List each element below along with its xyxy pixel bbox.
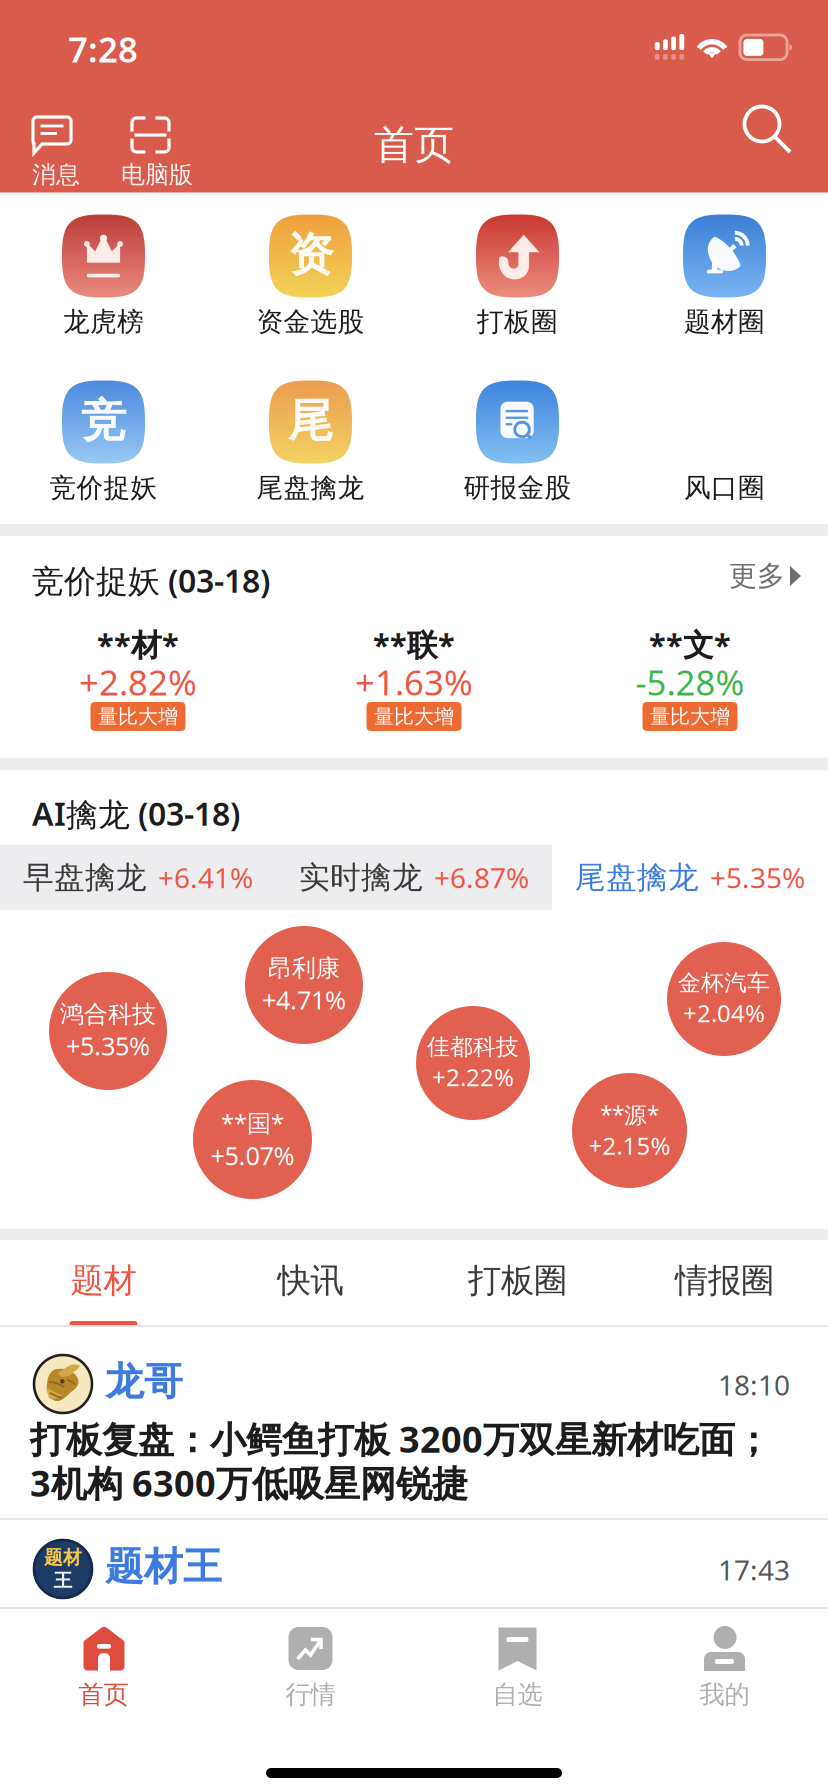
staticText: 早盘擒龙 (23, 859, 147, 896)
staticText: 实时擒龙 (299, 859, 423, 896)
staticText: 题材圈 (684, 305, 765, 338)
staticText: 自选 (492, 1679, 542, 1710)
button[interactable]: 自选 (414, 1609, 621, 1729)
staticText: 竞价捉妖 (03-18) (32, 559, 270, 601)
staticText: 首页 (78, 1679, 128, 1710)
button[interactable]: 打板圈 (414, 1240, 621, 1327)
staticText: +2.04% (683, 997, 765, 1029)
staticText: -5.28% (635, 659, 744, 705)
staticText: 消息 (32, 160, 80, 189)
staticText: 尾 (288, 393, 333, 449)
button[interactable]: 竞 (0, 358, 207, 524)
staticText: 电脑版 (121, 160, 193, 189)
staticText: 行情 (285, 1679, 335, 1710)
staticText: 尾盘擒龙 (575, 859, 699, 896)
button[interactable]: 龙虎榜 (0, 192, 207, 358)
staticText: 量比大增 (98, 704, 178, 729)
staticText: 研报金股 (463, 471, 571, 504)
staticText: 3机构 6300万低吸星网锐捷 (30, 1459, 468, 1507)
staticText: +2.22% (432, 1061, 514, 1093)
staticText: 首页 (374, 120, 454, 169)
staticText: 佳都科技 (427, 1033, 519, 1061)
button[interactable]: 研报金股 (414, 358, 621, 524)
staticText: +5.35% (66, 1029, 150, 1062)
button[interactable]: 搜索 (740, 102, 800, 162)
staticText: +5.35% (710, 859, 805, 896)
staticText: +6.87% (434, 859, 529, 896)
staticText: 题材 (70, 1260, 136, 1301)
staticText: 王 (53, 1569, 72, 1592)
staticText: 尾盘擒龙 (256, 471, 364, 504)
staticText: 竞价捉妖 (49, 471, 157, 504)
staticText: 量比大增 (374, 704, 454, 729)
button[interactable]: 打板圈 (414, 192, 621, 358)
staticText: 资 (288, 227, 333, 283)
staticText: 打板圈 (468, 1260, 567, 1301)
staticText: 风口圈 (684, 471, 765, 504)
staticText: 情报圈 (675, 1260, 774, 1301)
button[interactable]: 风口圈 (621, 358, 828, 524)
staticText: 题材王 (105, 1543, 222, 1590)
button[interactable]: 首页 (0, 1609, 207, 1729)
button[interactable]: 实时擒龙 (276, 845, 552, 910)
staticText: AI擒龙 (03-18) (32, 792, 240, 835)
staticText: 打板圈 (477, 305, 558, 338)
button[interactable]: 尾盘擒龙 (552, 845, 828, 910)
button[interactable]: 更多 (672, 553, 802, 599)
staticText: 7:28 (68, 26, 138, 72)
button[interactable]: 题材 (0, 1240, 207, 1327)
button[interactable]: 资 (207, 192, 414, 358)
staticText: 昂利康 (268, 953, 340, 983)
staticText: +4.71% (262, 983, 346, 1016)
staticText: 打板复盘：小鳄鱼打板 3200万双星新材吃面； (30, 1415, 771, 1463)
staticText: 题材 (44, 1546, 82, 1569)
staticText: **源* (600, 1099, 659, 1130)
staticText: +2.15% (588, 1130, 670, 1161)
staticText: 鸿合科技 (60, 999, 156, 1029)
staticText: 竞 (81, 393, 126, 449)
staticText: 龙虎榜 (63, 305, 144, 338)
button[interactable]: 快讯 (207, 1240, 414, 1327)
staticText: **联* (373, 624, 455, 665)
button[interactable]: 尾 (207, 358, 414, 524)
staticText: +5.07% (210, 1139, 294, 1172)
staticText: 我的 (699, 1679, 749, 1710)
staticText: 更多 (729, 559, 785, 593)
button[interactable]: 电脑版 (130, 88, 208, 193)
button[interactable]: 早盘擒龙 (0, 845, 276, 910)
staticText: +2.82% (79, 659, 197, 705)
staticText: 17:43 (718, 1551, 790, 1588)
staticText: 龙哥 (105, 1358, 183, 1405)
staticText: 18:10 (718, 1366, 790, 1403)
staticText: +1.63% (355, 659, 473, 705)
staticText: 金杯汽车 (678, 969, 770, 997)
staticText: **国* (221, 1107, 284, 1139)
staticText: 快讯 (277, 1260, 343, 1301)
button[interactable]: 题材圈 (621, 192, 828, 358)
button[interactable]: 我的 (621, 1609, 828, 1729)
staticText: **材* (97, 624, 179, 665)
button[interactable]: 行情 (207, 1609, 414, 1729)
staticText: 量比大增 (650, 704, 730, 729)
staticText: +6.41% (158, 859, 253, 896)
staticText: **文* (649, 624, 731, 665)
staticText: 资金选股 (256, 305, 364, 338)
button[interactable]: 消息 (31, 88, 107, 193)
button[interactable]: 情报圈 (621, 1240, 828, 1327)
